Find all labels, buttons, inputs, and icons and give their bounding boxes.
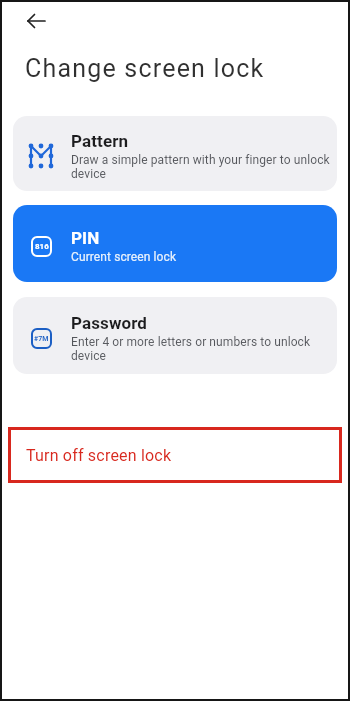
staticText: Draw a simple pattern with your finger t… xyxy=(71,153,330,181)
staticText: #7M xyxy=(34,335,49,343)
staticText: 816 xyxy=(35,242,49,251)
staticText: Change screen lock xyxy=(25,54,265,83)
button[interactable]: Pattern xyxy=(13,116,337,191)
staticText: Current screen lock xyxy=(71,250,177,264)
staticText: Password xyxy=(71,313,148,333)
button[interactable]: 816 xyxy=(13,205,337,282)
staticText: PIN xyxy=(71,228,100,248)
button[interactable]: Turn off screen lock xyxy=(8,427,342,483)
staticText: Enter 4 or more letters or numbers to un… xyxy=(71,335,311,363)
staticText: Pattern xyxy=(71,131,129,151)
button[interactable]: #7M xyxy=(13,297,337,374)
staticText: Turn off screen lock xyxy=(26,446,172,465)
button[interactable] xyxy=(27,13,46,29)
